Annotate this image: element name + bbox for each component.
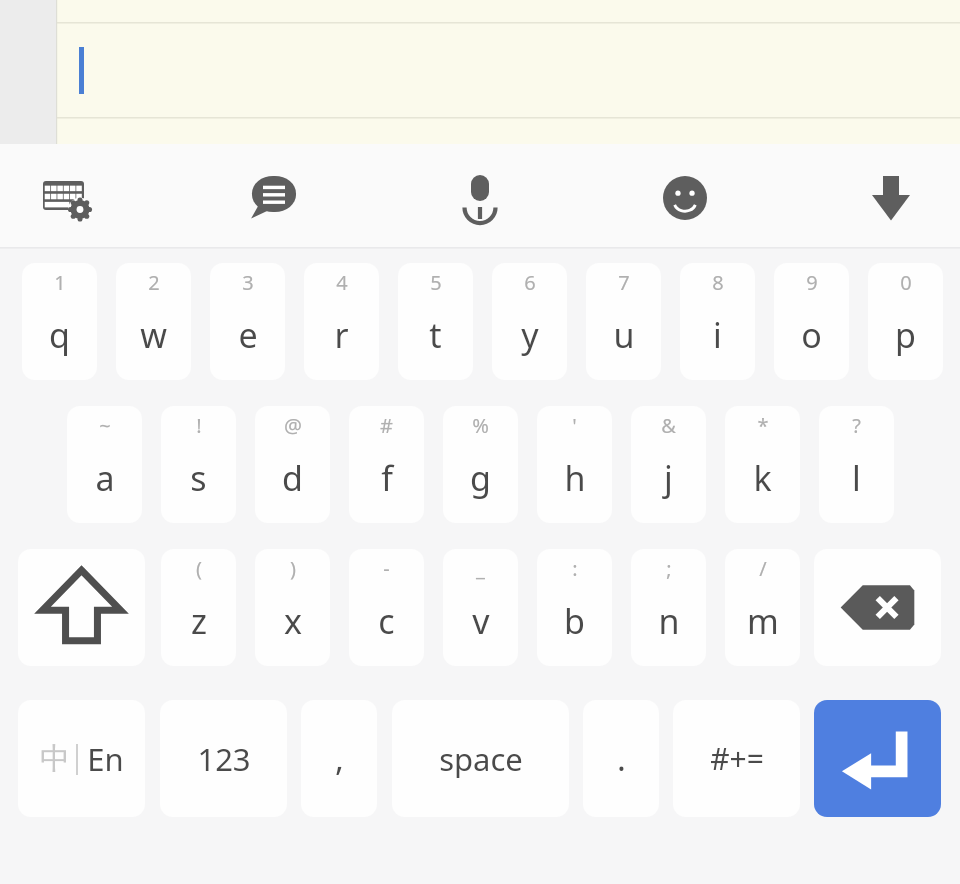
button[interactable]: / xyxy=(725,549,800,666)
button[interactable]: & xyxy=(631,406,706,523)
staticText: i xyxy=(713,312,722,358)
button[interactable]: Voice input xyxy=(436,154,524,242)
button[interactable]: ( xyxy=(161,549,236,666)
staticText: a xyxy=(95,455,115,501)
staticText: r xyxy=(334,312,349,358)
button[interactable]: 4 xyxy=(304,263,379,380)
button[interactable]: Hide keyboard xyxy=(847,154,935,242)
staticText: g xyxy=(470,455,491,501)
staticText: w xyxy=(140,312,167,358)
staticText: v xyxy=(472,598,490,644)
staticText: 4 xyxy=(336,269,348,296)
staticText: # xyxy=(380,412,393,439)
staticText: #+= xyxy=(710,738,764,779)
button[interactable]: @ xyxy=(255,406,330,523)
staticText: ! xyxy=(196,412,202,439)
staticText: * xyxy=(757,412,769,439)
button[interactable]: 9 xyxy=(774,263,849,380)
staticText: k xyxy=(753,455,772,501)
staticText: . xyxy=(617,736,626,781)
staticText: b xyxy=(564,598,585,644)
button[interactable]: ) xyxy=(255,549,330,666)
staticText: ; xyxy=(666,555,672,582)
staticText: y xyxy=(521,312,539,358)
button[interactable]: #+= xyxy=(673,700,800,817)
staticText: 中 xyxy=(40,740,70,778)
staticText: 8 xyxy=(712,269,724,296)
button[interactable]: 1 xyxy=(22,263,97,380)
button[interactable]: ; xyxy=(631,549,706,666)
button[interactable]: Switch language xyxy=(18,700,145,817)
staticText: ' xyxy=(572,412,577,439)
staticText: p xyxy=(895,312,916,358)
button[interactable]: Shift xyxy=(18,549,145,666)
button[interactable]: : xyxy=(537,549,612,666)
staticText: 123 xyxy=(197,738,251,780)
staticText: ) xyxy=(290,555,296,582)
button[interactable]: Keyboard settings xyxy=(24,154,112,242)
button[interactable]: Conversation xyxy=(230,154,318,242)
staticText: ~ xyxy=(99,412,111,439)
button[interactable]: space xyxy=(392,700,569,817)
staticText: ? xyxy=(852,412,861,439)
staticText: & xyxy=(661,412,676,439)
button[interactable]: ' xyxy=(537,406,612,523)
staticText: t xyxy=(429,312,442,358)
staticText: En xyxy=(87,738,124,780)
staticText: c xyxy=(378,598,395,644)
button[interactable]: ~ xyxy=(67,406,142,523)
button[interactable]: Enter xyxy=(814,700,941,817)
button[interactable]: Backspace xyxy=(814,549,941,666)
staticText: 7 xyxy=(618,269,630,296)
staticText: 3 xyxy=(242,269,254,296)
button[interactable]: * xyxy=(725,406,800,523)
staticText: space xyxy=(439,738,523,780)
button[interactable]: 5 xyxy=(398,263,473,380)
staticText: : xyxy=(572,555,578,582)
staticText: j xyxy=(664,455,673,501)
staticText: 5 xyxy=(430,269,442,296)
button[interactable]: . xyxy=(583,700,659,817)
staticText: l xyxy=(852,455,861,501)
button[interactable]: Emoji xyxy=(641,154,729,242)
staticText: h xyxy=(564,455,586,501)
staticText: s xyxy=(190,455,207,501)
staticText: ( xyxy=(196,555,202,582)
button[interactable]: 0 xyxy=(868,263,943,380)
staticText: m xyxy=(747,598,779,644)
button[interactable]: % xyxy=(443,406,518,523)
button[interactable]: 6 xyxy=(492,263,567,380)
staticText: 6 xyxy=(524,269,536,296)
button[interactable]: ! xyxy=(161,406,236,523)
button[interactable]: ? xyxy=(819,406,894,523)
staticText: d xyxy=(282,455,303,501)
staticText: 1 xyxy=(54,269,66,296)
staticText: % xyxy=(472,412,489,439)
button[interactable]: - xyxy=(349,549,424,666)
staticText: - xyxy=(383,555,390,582)
staticText: @ xyxy=(284,412,302,439)
staticText: o xyxy=(801,312,822,358)
button[interactable]: # xyxy=(349,406,424,523)
button[interactable]: 7 xyxy=(586,263,661,380)
staticText: z xyxy=(191,598,207,644)
button[interactable]: 123 xyxy=(160,700,287,817)
staticText: / xyxy=(759,555,767,582)
staticText: _ xyxy=(476,555,485,582)
staticText: n xyxy=(658,598,680,644)
staticText: 0 xyxy=(900,269,912,296)
button[interactable]: 8 xyxy=(680,263,755,380)
staticText: f xyxy=(381,455,393,501)
staticText: u xyxy=(613,312,635,358)
staticText: 2 xyxy=(148,269,160,296)
button[interactable]: 3 xyxy=(210,263,285,380)
staticText: , xyxy=(335,736,344,781)
button[interactable]: 2 xyxy=(116,263,191,380)
staticText: e xyxy=(238,312,258,358)
staticText: x xyxy=(284,598,302,644)
staticText: 9 xyxy=(806,269,818,296)
button[interactable]: , xyxy=(301,700,377,817)
staticText: q xyxy=(49,312,70,358)
button[interactable]: _ xyxy=(443,549,518,666)
